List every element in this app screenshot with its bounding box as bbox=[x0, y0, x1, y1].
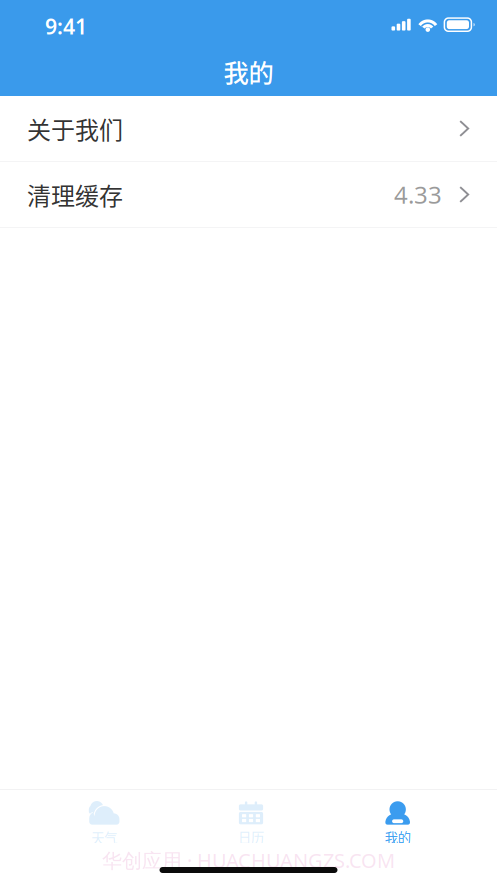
button[interactable]: 天气 bbox=[31, 801, 178, 847]
staticText: 天气 bbox=[91, 828, 117, 847]
staticText: 4.33 bbox=[394, 179, 442, 210]
staticText: 9:41 bbox=[45, 12, 87, 40]
button[interactable]: 日历 bbox=[178, 801, 324, 847]
staticText: 清理缓存 bbox=[27, 177, 123, 212]
staticText: 华创应用 · HUACHUANGZS.COM bbox=[102, 847, 395, 874]
button[interactable]: 关于我们 bbox=[0, 96, 497, 162]
staticText: 日历 bbox=[238, 827, 264, 847]
button[interactable]: 我的 bbox=[324, 801, 471, 847]
staticText: 我的 bbox=[385, 828, 411, 847]
staticText: 我的 bbox=[223, 53, 273, 90]
staticText: 关于我们 bbox=[27, 111, 123, 146]
button[interactable]: 清理缓存 bbox=[0, 162, 497, 228]
